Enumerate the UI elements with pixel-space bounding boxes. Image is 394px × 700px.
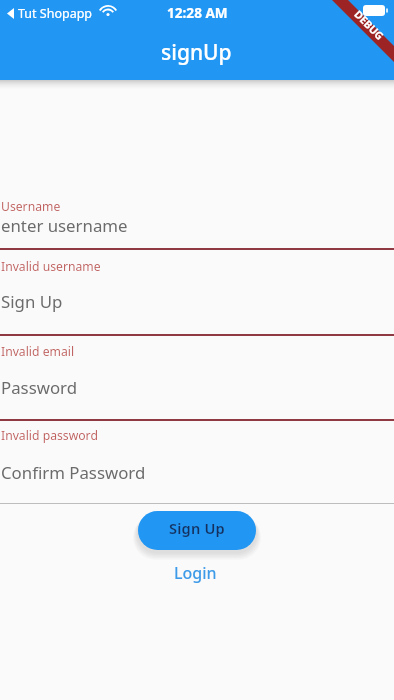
staticText: enter username <box>1 214 128 237</box>
button[interactable]: Login <box>170 559 221 587</box>
other: Battery <box>363 5 388 16</box>
staticText: Sign Up <box>1 290 63 313</box>
staticText: Invalid username <box>1 258 101 275</box>
staticText: DEBUG <box>351 7 387 43</box>
button[interactable]: Username <box>0 190 394 250</box>
staticText: Invalid password <box>1 427 98 444</box>
button[interactable]: Invalid email <box>0 337 394 420</box>
staticText: Username <box>1 198 61 215</box>
staticText: Invalid email <box>1 343 75 360</box>
staticText: Confirm Password <box>1 461 146 484</box>
staticText: Password <box>1 376 77 399</box>
staticText: Sign Up <box>169 518 225 538</box>
button[interactable]: Invalid password <box>0 422 394 504</box>
button[interactable]: Invalid username <box>0 252 394 335</box>
button[interactable]: Sign Up <box>138 511 256 550</box>
other: Wi-Fi <box>100 4 116 16</box>
staticText: signUp <box>161 38 232 67</box>
staticText: Login <box>174 562 217 584</box>
staticText: 12:28 AM <box>167 3 228 22</box>
staticText: Tut Shopapp <box>18 5 93 22</box>
